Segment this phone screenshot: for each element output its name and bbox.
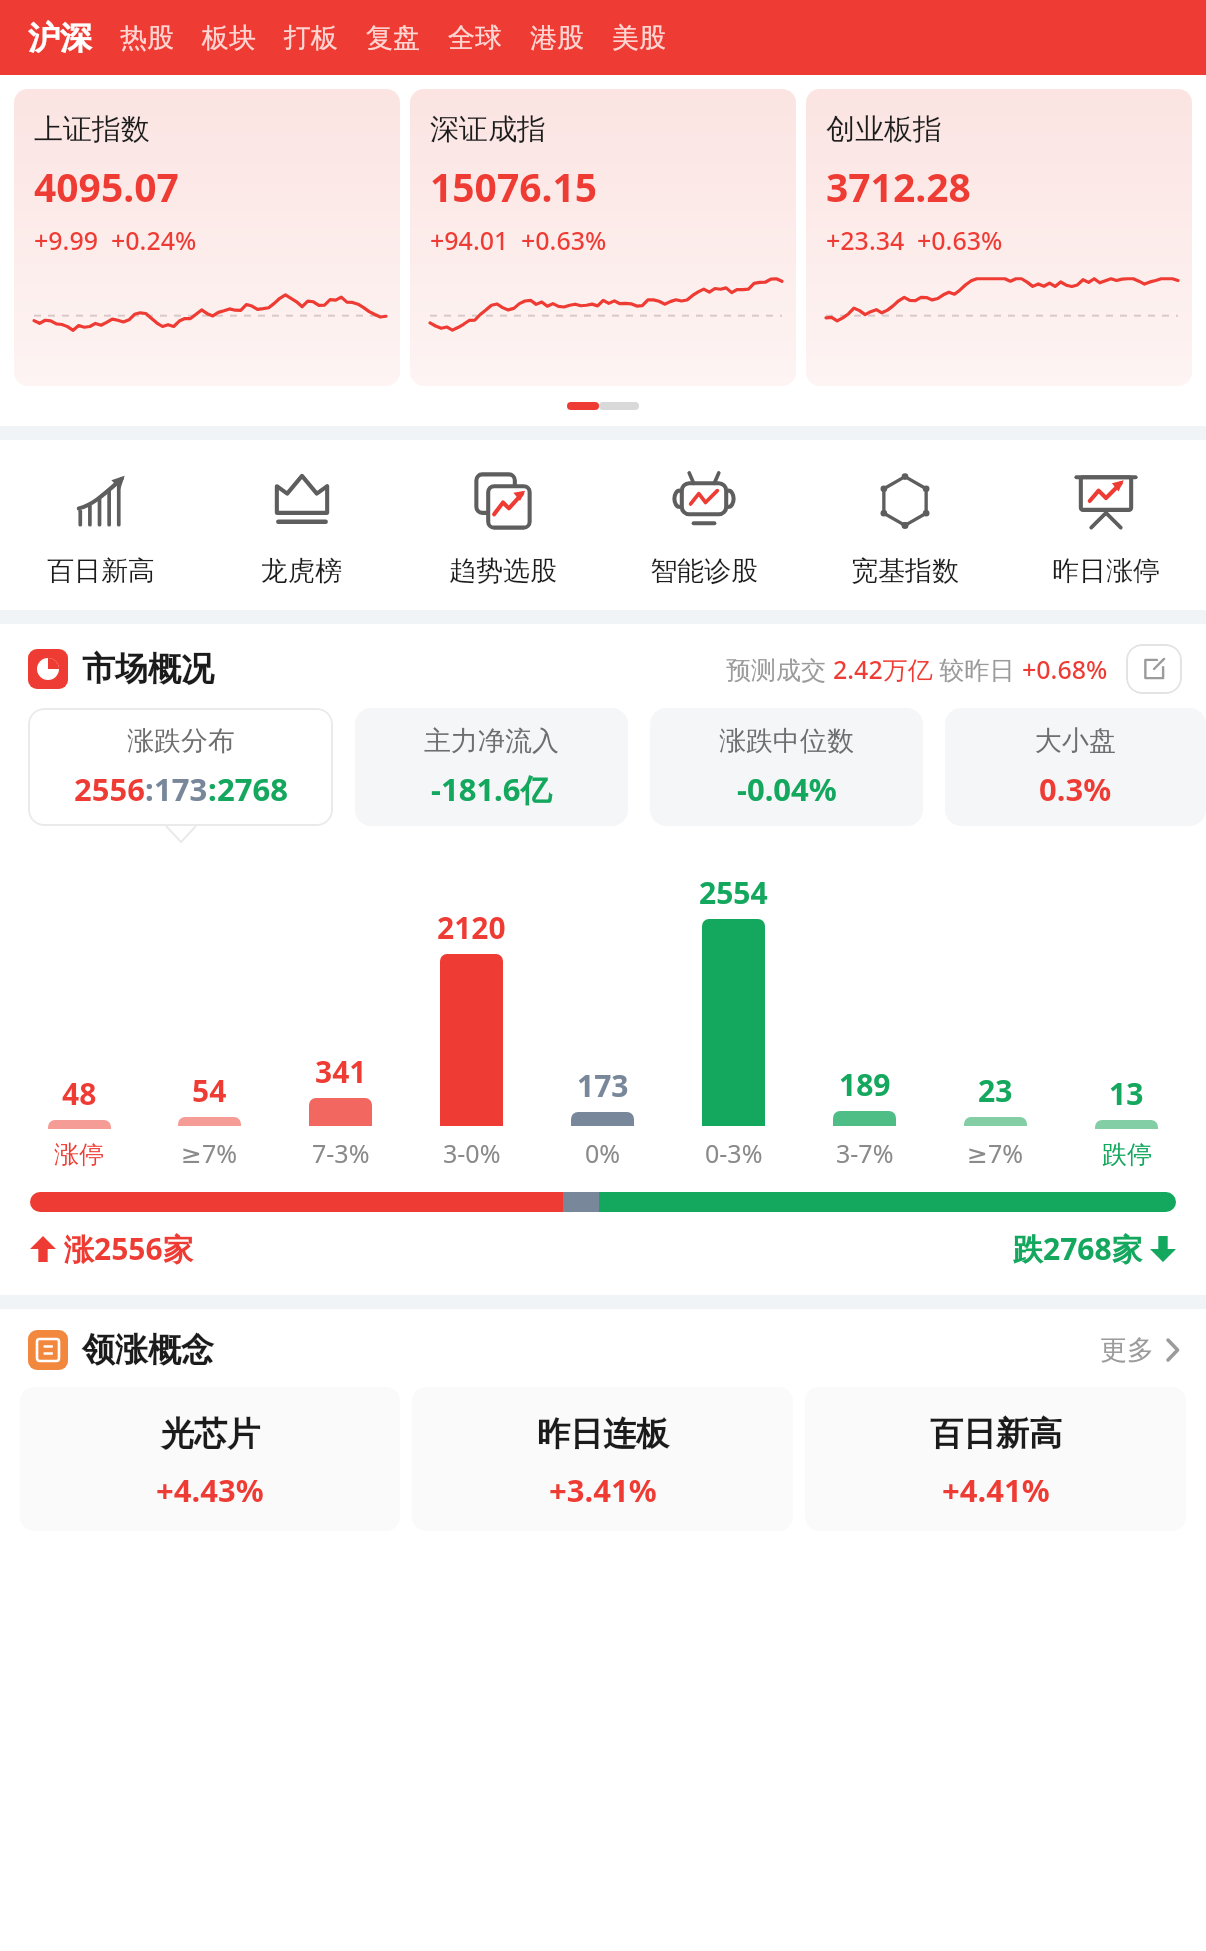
staticText: 龙虎榜 [261,554,342,588]
button[interactable]: 主力净流入 [355,708,628,826]
staticText: 大小盘 [1035,724,1116,758]
staticText: 7-3% [312,1136,370,1170]
staticText: 23 [978,1070,1013,1111]
staticText: 3-7% [836,1136,894,1170]
button[interactable]: 沪深 [28,18,92,58]
button[interactable]: 昨日涨停 [1005,464,1206,588]
staticText: 173 [154,768,208,810]
button[interactable]: 趋势选股 [402,464,603,588]
staticText: 173 [577,1065,629,1106]
staticText: 趋势选股 [449,554,557,588]
staticText: 3712.28 [826,160,971,213]
button[interactable]: 百日新高 [0,464,201,588]
staticText: 15076.15 [430,160,598,213]
button[interactable]: 展开市场概况 [1126,644,1182,694]
staticText: +0.24% [111,223,197,257]
staticText: +0.63% [917,223,1003,257]
staticText: 2120 [437,907,506,948]
staticText: 百日新高 [47,554,155,588]
staticText: 昨日涨停 [1052,554,1160,588]
button[interactable]: 龙虎榜 [201,464,402,588]
staticText: 跌2768家 [1013,1228,1142,1269]
staticText: 光芯片 [161,1413,260,1455]
staticText: 宽基指数 [851,554,959,588]
staticText: 上证指数 [34,111,150,148]
staticText: +0.68% [1022,652,1108,686]
staticText: 主力净流入 [424,724,559,758]
staticText: 13 [1109,1073,1144,1114]
staticText: -181.6亿 [431,768,552,810]
button[interactable]: 宽基指数 [804,464,1005,588]
button[interactable]: 全球 [448,21,502,55]
staticText: 189 [839,1064,891,1105]
staticText: 涨2556家 [64,1228,193,1269]
button[interactable]: 大小盘 [945,708,1206,826]
button[interactable]: 涨跌分布 [28,708,333,842]
button[interactable]: 港股 [530,21,584,55]
button[interactable]: 打板 [284,21,338,55]
staticText: 2556 [74,768,145,810]
button[interactable]: 热股 [120,21,174,55]
staticText: : [145,768,154,810]
staticText: : [208,768,217,810]
staticText: 较昨日 [933,652,1022,686]
staticText: 0% [585,1136,621,1170]
button[interactable]: 深证成指 [410,89,796,386]
staticText: +0.63% [521,223,607,257]
staticText: 4095.07 [34,160,179,213]
staticText: 2768 [217,768,288,810]
staticText: 跌停 [1102,1139,1152,1170]
button[interactable]: 昨日连板 [412,1387,793,1531]
button[interactable]: 板块 [202,21,256,55]
staticText: 2.42万亿 [833,652,933,686]
staticText: 341 [315,1051,367,1092]
staticText: 领涨概念 [82,1329,214,1371]
staticText: ≥7% [181,1136,238,1170]
staticText: 0-3% [705,1136,763,1170]
staticText: +9.99 [34,223,99,257]
button[interactable]: 复盘 [366,21,420,55]
staticText: -0.04% [737,768,837,810]
staticText: 0.3% [1039,768,1112,810]
staticText: +94.01 [430,223,509,257]
staticText: 涨跌分布 [127,724,235,758]
staticText: 涨跌中位数 [719,724,854,758]
staticText: +23.34 [826,223,905,257]
staticText: 48 [62,1073,97,1114]
staticText: 2554 [699,872,768,913]
staticText: 百日新高 [930,1413,1062,1455]
staticText: 创业板指 [826,111,942,148]
staticText: 更多 [1100,1333,1154,1367]
button[interactable]: 涨跌中位数 [650,708,923,826]
button[interactable]: 美股 [612,21,666,55]
staticText: 涨停 [54,1139,104,1170]
staticText: 深证成指 [430,111,546,148]
staticText: 54 [192,1070,227,1111]
button[interactable]: 智能诊股 [603,464,804,588]
button[interactable]: 创业板指 [806,89,1192,386]
staticText: +3.41% [549,1469,657,1511]
button[interactable]: 上证指数 [14,89,400,386]
staticText: +4.43% [156,1469,264,1511]
staticText: ≥7% [967,1136,1024,1170]
staticText: 市场概况 [82,648,214,690]
button[interactable]: 更多 [1100,1333,1182,1367]
button[interactable]: 光芯片 [20,1387,400,1531]
staticText: 昨日连板 [537,1413,669,1455]
staticText: 智能诊股 [650,554,758,588]
staticText: +4.41% [942,1469,1050,1511]
staticText: 预测成交 [726,652,833,686]
button[interactable]: 百日新高 [805,1387,1186,1531]
staticText: 3-0% [443,1136,501,1170]
